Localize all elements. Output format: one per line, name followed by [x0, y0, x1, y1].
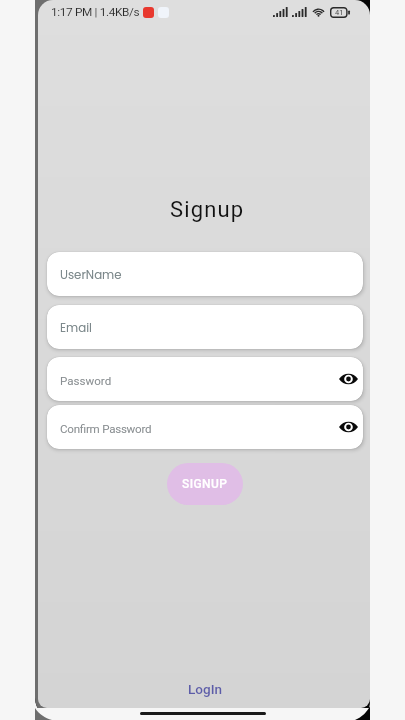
button[interactable]: Show password — [334, 365, 362, 393]
staticText: Signup — [170, 197, 245, 223]
staticText: Password — [60, 374, 112, 388]
button[interactable]: Show password — [334, 413, 362, 441]
staticText: SIGNUP — [182, 477, 228, 491]
button[interactable]: SIGNUP — [167, 463, 243, 505]
staticText: Confirm Password — [60, 422, 152, 436]
staticText: 41 — [335, 8, 344, 17]
staticText: UserName — [60, 267, 122, 284]
button[interactable]: Password — [47, 357, 363, 401]
staticText: 1:17 PM | 1.4KB/s — [51, 5, 140, 19]
button[interactable]: UserName — [47, 252, 363, 296]
staticText: LogIn — [188, 681, 222, 697]
button[interactable]: Email — [47, 305, 363, 349]
button[interactable]: LogIn — [178, 676, 232, 702]
button[interactable]: Confirm Password — [47, 405, 363, 449]
staticText: Email — [60, 320, 92, 337]
